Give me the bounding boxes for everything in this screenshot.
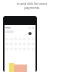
staticText: in and click for more [0,2,64,6]
staticText: payments [0,6,64,10]
